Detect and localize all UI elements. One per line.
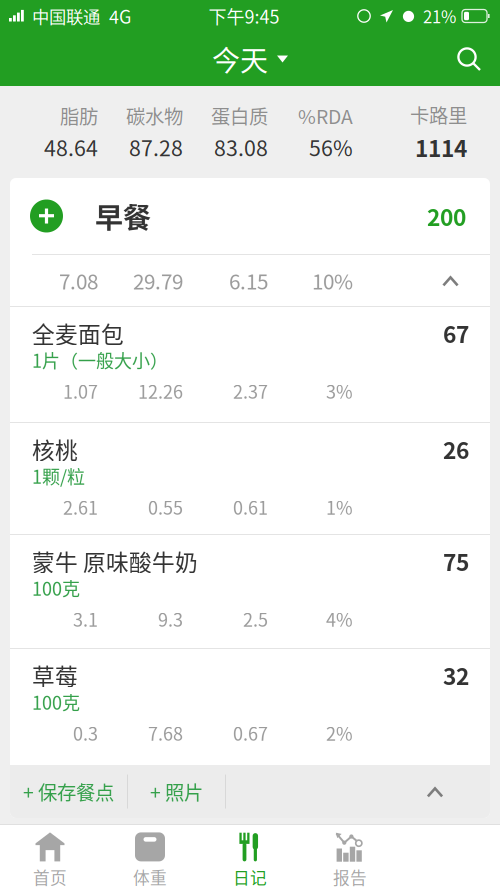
- staticText: 6.15: [229, 265, 268, 295]
- staticText: 200: [427, 200, 466, 232]
- staticText: 0.61: [233, 494, 268, 520]
- staticText: 今天: [212, 39, 268, 79]
- staticText: 全麦面包: [32, 317, 124, 349]
- staticText: 12.26: [138, 378, 183, 404]
- button[interactable]: 草莓: [10, 649, 490, 765]
- button[interactable]: 体重: [100, 825, 200, 889]
- staticText: 48.64: [44, 132, 98, 162]
- staticText: 脂肪: [60, 102, 98, 130]
- staticText: %RDA: [298, 102, 353, 130]
- staticText: 100克: [32, 689, 80, 715]
- staticText: 3%: [326, 378, 353, 404]
- staticText: 卡路里: [410, 101, 467, 129]
- staticText: 日记: [233, 865, 267, 889]
- button[interactable]: 核桃: [10, 423, 490, 534]
- staticText: 核桃: [32, 433, 78, 465]
- staticText: 蒙牛 原味酸牛奶: [32, 545, 198, 577]
- staticText: 蛋白质: [211, 102, 268, 130]
- button[interactable]: Collapse: [411, 765, 490, 818]
- staticText: 1片（一般大小）: [32, 347, 168, 373]
- staticText: 29.79: [133, 265, 183, 295]
- staticText: 56%: [309, 132, 353, 162]
- staticText: 早餐: [95, 196, 151, 236]
- staticText: 21%: [423, 4, 456, 28]
- staticText: 首页: [33, 865, 67, 889]
- staticText: 83.08: [214, 132, 268, 162]
- staticText: 下午9:45: [208, 3, 279, 29]
- button[interactable]: 日记: [200, 825, 300, 889]
- staticText: 4%: [326, 606, 353, 632]
- staticText: 9.3: [158, 606, 183, 632]
- button[interactable]: 报告: [300, 825, 400, 889]
- staticText: 100克: [32, 575, 80, 601]
- staticText: 10%: [312, 265, 353, 295]
- staticText: 2.61: [63, 494, 98, 520]
- button[interactable]: 首页: [0, 825, 100, 889]
- staticText: 1颗/粒: [32, 463, 85, 489]
- staticText: 中国联通: [32, 3, 100, 29]
- staticText: 67: [443, 317, 469, 349]
- staticText: 1%: [326, 494, 353, 520]
- staticText: 4G: [109, 3, 131, 29]
- staticText: 0.67: [233, 720, 268, 746]
- staticText: 2.37: [233, 378, 268, 404]
- staticText: 3.1: [73, 606, 98, 632]
- staticText: 7.68: [148, 720, 183, 746]
- staticText: 碳水物: [126, 102, 183, 130]
- staticText: 体重: [133, 865, 167, 889]
- staticText: 26: [443, 433, 469, 465]
- staticText: 1.07: [63, 378, 98, 404]
- staticText: 32: [443, 659, 469, 691]
- staticText: + 保存餐点: [23, 777, 114, 805]
- staticText: 草莓: [32, 659, 78, 691]
- staticText: 7.08: [59, 265, 98, 295]
- staticText: 1114: [415, 131, 467, 163]
- staticText: 2%: [326, 720, 353, 746]
- staticText: 87.28: [129, 132, 183, 162]
- staticText: 报告: [333, 865, 367, 889]
- button[interactable]: 早餐: [10, 178, 490, 254]
- button[interactable]: 7.08: [10, 255, 490, 306]
- button[interactable]: 今天: [185, 32, 315, 86]
- button[interactable]: 全麦面包: [10, 307, 490, 422]
- button[interactable]: + 照片: [128, 765, 225, 818]
- staticText: 75: [443, 545, 469, 577]
- button[interactable]: + 保存餐点: [10, 765, 127, 818]
- button[interactable]: Search: [438, 32, 500, 86]
- staticText: 2.5: [243, 606, 268, 632]
- button[interactable]: 蒙牛 原味酸牛奶: [10, 535, 490, 648]
- staticText: 0.55: [148, 494, 183, 520]
- staticText: 0.3: [73, 720, 98, 746]
- staticText: + 照片: [150, 777, 203, 805]
